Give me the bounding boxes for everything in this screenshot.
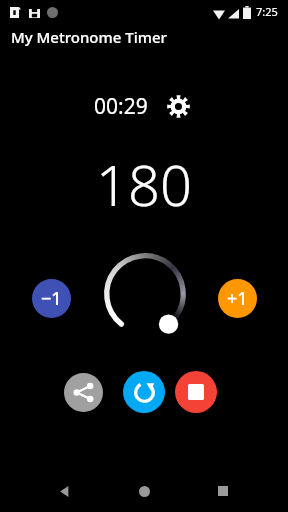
button[interactable]: Stop bbox=[175, 371, 217, 413]
staticText: −1 bbox=[41, 286, 62, 311]
button[interactable]: Home bbox=[128, 475, 160, 507]
button[interactable]: Tempo dial bbox=[94, 243, 196, 345]
button[interactable]: Back bbox=[48, 475, 80, 507]
staticText: My Metronome Timer bbox=[11, 27, 167, 47]
button[interactable]: Recent apps bbox=[207, 475, 239, 507]
button[interactable]: −1 bbox=[32, 279, 71, 318]
button[interactable]: Restart bbox=[123, 371, 165, 413]
staticText: +1 bbox=[227, 286, 248, 311]
staticText: 180 bbox=[96, 146, 192, 222]
staticText: 7:25 bbox=[256, 4, 278, 19]
button[interactable]: Settings bbox=[162, 90, 194, 122]
button[interactable]: +1 bbox=[218, 279, 257, 318]
staticText: 00:29 bbox=[94, 92, 148, 121]
button[interactable]: Share bbox=[64, 373, 103, 412]
